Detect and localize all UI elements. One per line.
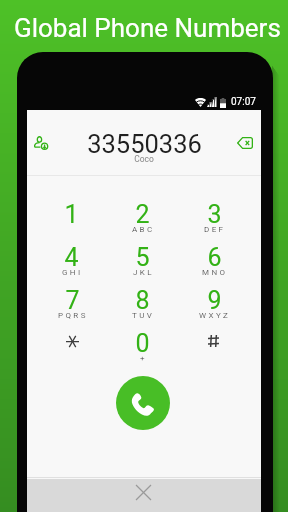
staticText: 07:07	[231, 96, 256, 108]
staticText: 4	[64, 243, 79, 272]
staticText: Global Phone Numbers	[14, 13, 281, 43]
staticText: +	[140, 354, 147, 363]
button[interactable]: 0	[107, 329, 178, 372]
button[interactable]: Add contact	[34, 136, 48, 150]
button[interactable]: 8	[107, 286, 178, 329]
staticText: 7	[65, 286, 80, 315]
button[interactable]	[36, 329, 107, 372]
staticText: 6	[207, 243, 222, 272]
staticText: DEF	[204, 225, 226, 234]
button[interactable]: 2	[107, 200, 178, 243]
button[interactable]	[178, 329, 249, 372]
staticText: Coco	[134, 154, 154, 164]
button[interactable]: 6	[178, 243, 249, 286]
staticText: 1	[64, 200, 79, 229]
staticText: WXYZ	[199, 311, 231, 320]
button[interactable]: 9	[178, 286, 249, 329]
button[interactable]: Close	[131, 480, 155, 504]
button[interactable]: 7	[36, 286, 107, 329]
staticText: JKL	[133, 268, 154, 277]
button[interactable]: Call	[116, 376, 170, 430]
staticText: 2	[135, 200, 150, 229]
staticText: 33550336	[87, 129, 202, 159]
staticText: 9	[207, 286, 222, 315]
staticText: PQRS	[58, 311, 88, 320]
button[interactable]: 3	[178, 200, 249, 243]
button[interactable]: Backspace	[237, 137, 253, 149]
button[interactable]: 1	[36, 200, 107, 243]
staticText: ABC	[132, 225, 155, 234]
button[interactable]: 4	[36, 243, 107, 286]
staticText: 5	[135, 243, 150, 272]
staticText: 0	[135, 329, 150, 358]
staticText: MNO	[202, 268, 228, 277]
staticText: 8	[135, 286, 150, 315]
button[interactable]: 5	[107, 243, 178, 286]
staticText: 3	[207, 200, 222, 229]
staticText: GHI	[62, 268, 83, 277]
staticText: TUV	[132, 311, 155, 320]
